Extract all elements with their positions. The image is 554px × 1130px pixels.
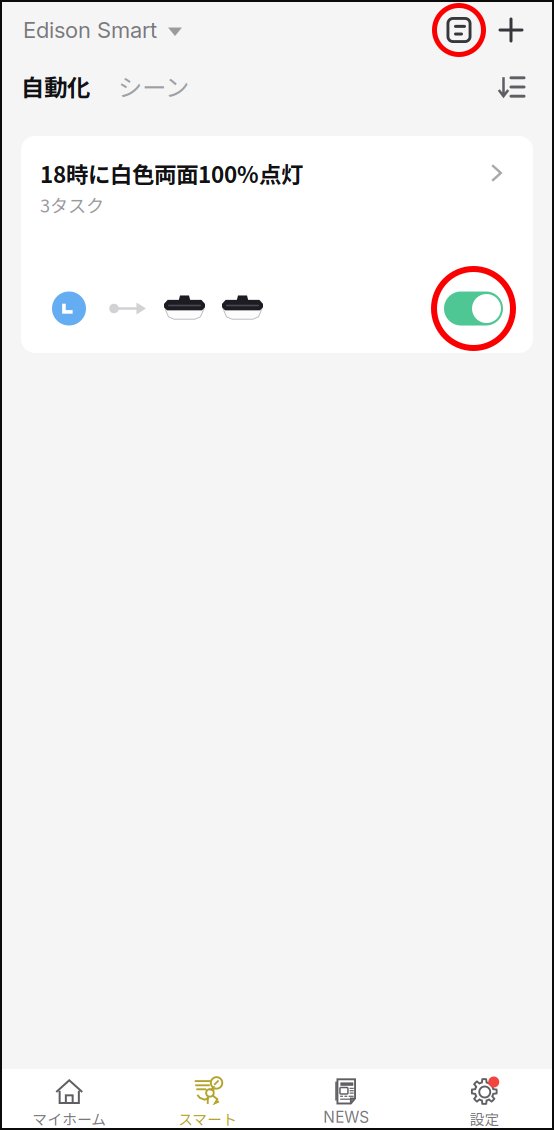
staticText: 自動化 [21, 69, 90, 103]
staticText: Edison Smart [23, 17, 157, 43]
staticText: 設定 [470, 1108, 500, 1129]
staticText: シーン [118, 68, 189, 103]
staticText: NEWS [323, 1108, 369, 1127]
button[interactable]: マイホーム [0, 1069, 138, 1130]
button[interactable]: 自動化 [0, 60, 110, 112]
button[interactable]: NEWS [277, 1069, 415, 1130]
button[interactable]: Edison Smart [0, 0, 196, 60]
staticText: 18時に白色両面100%点灯 [40, 157, 303, 189]
button[interactable]: Sort [484, 60, 538, 112]
button[interactable]: シーン [110, 60, 197, 112]
staticText: 3タスク [40, 191, 104, 218]
staticText: スマート [178, 1108, 237, 1129]
staticText: マイホーム [32, 1108, 106, 1129]
button[interactable]: 設定 [415, 1069, 554, 1130]
button[interactable]: Add automation [487, 0, 535, 60]
button[interactable]: 18時に白色両面100%点灯 [21, 136, 533, 353]
button[interactable]: Automation log [431, 0, 487, 60]
button[interactable]: スマート [138, 1069, 277, 1130]
